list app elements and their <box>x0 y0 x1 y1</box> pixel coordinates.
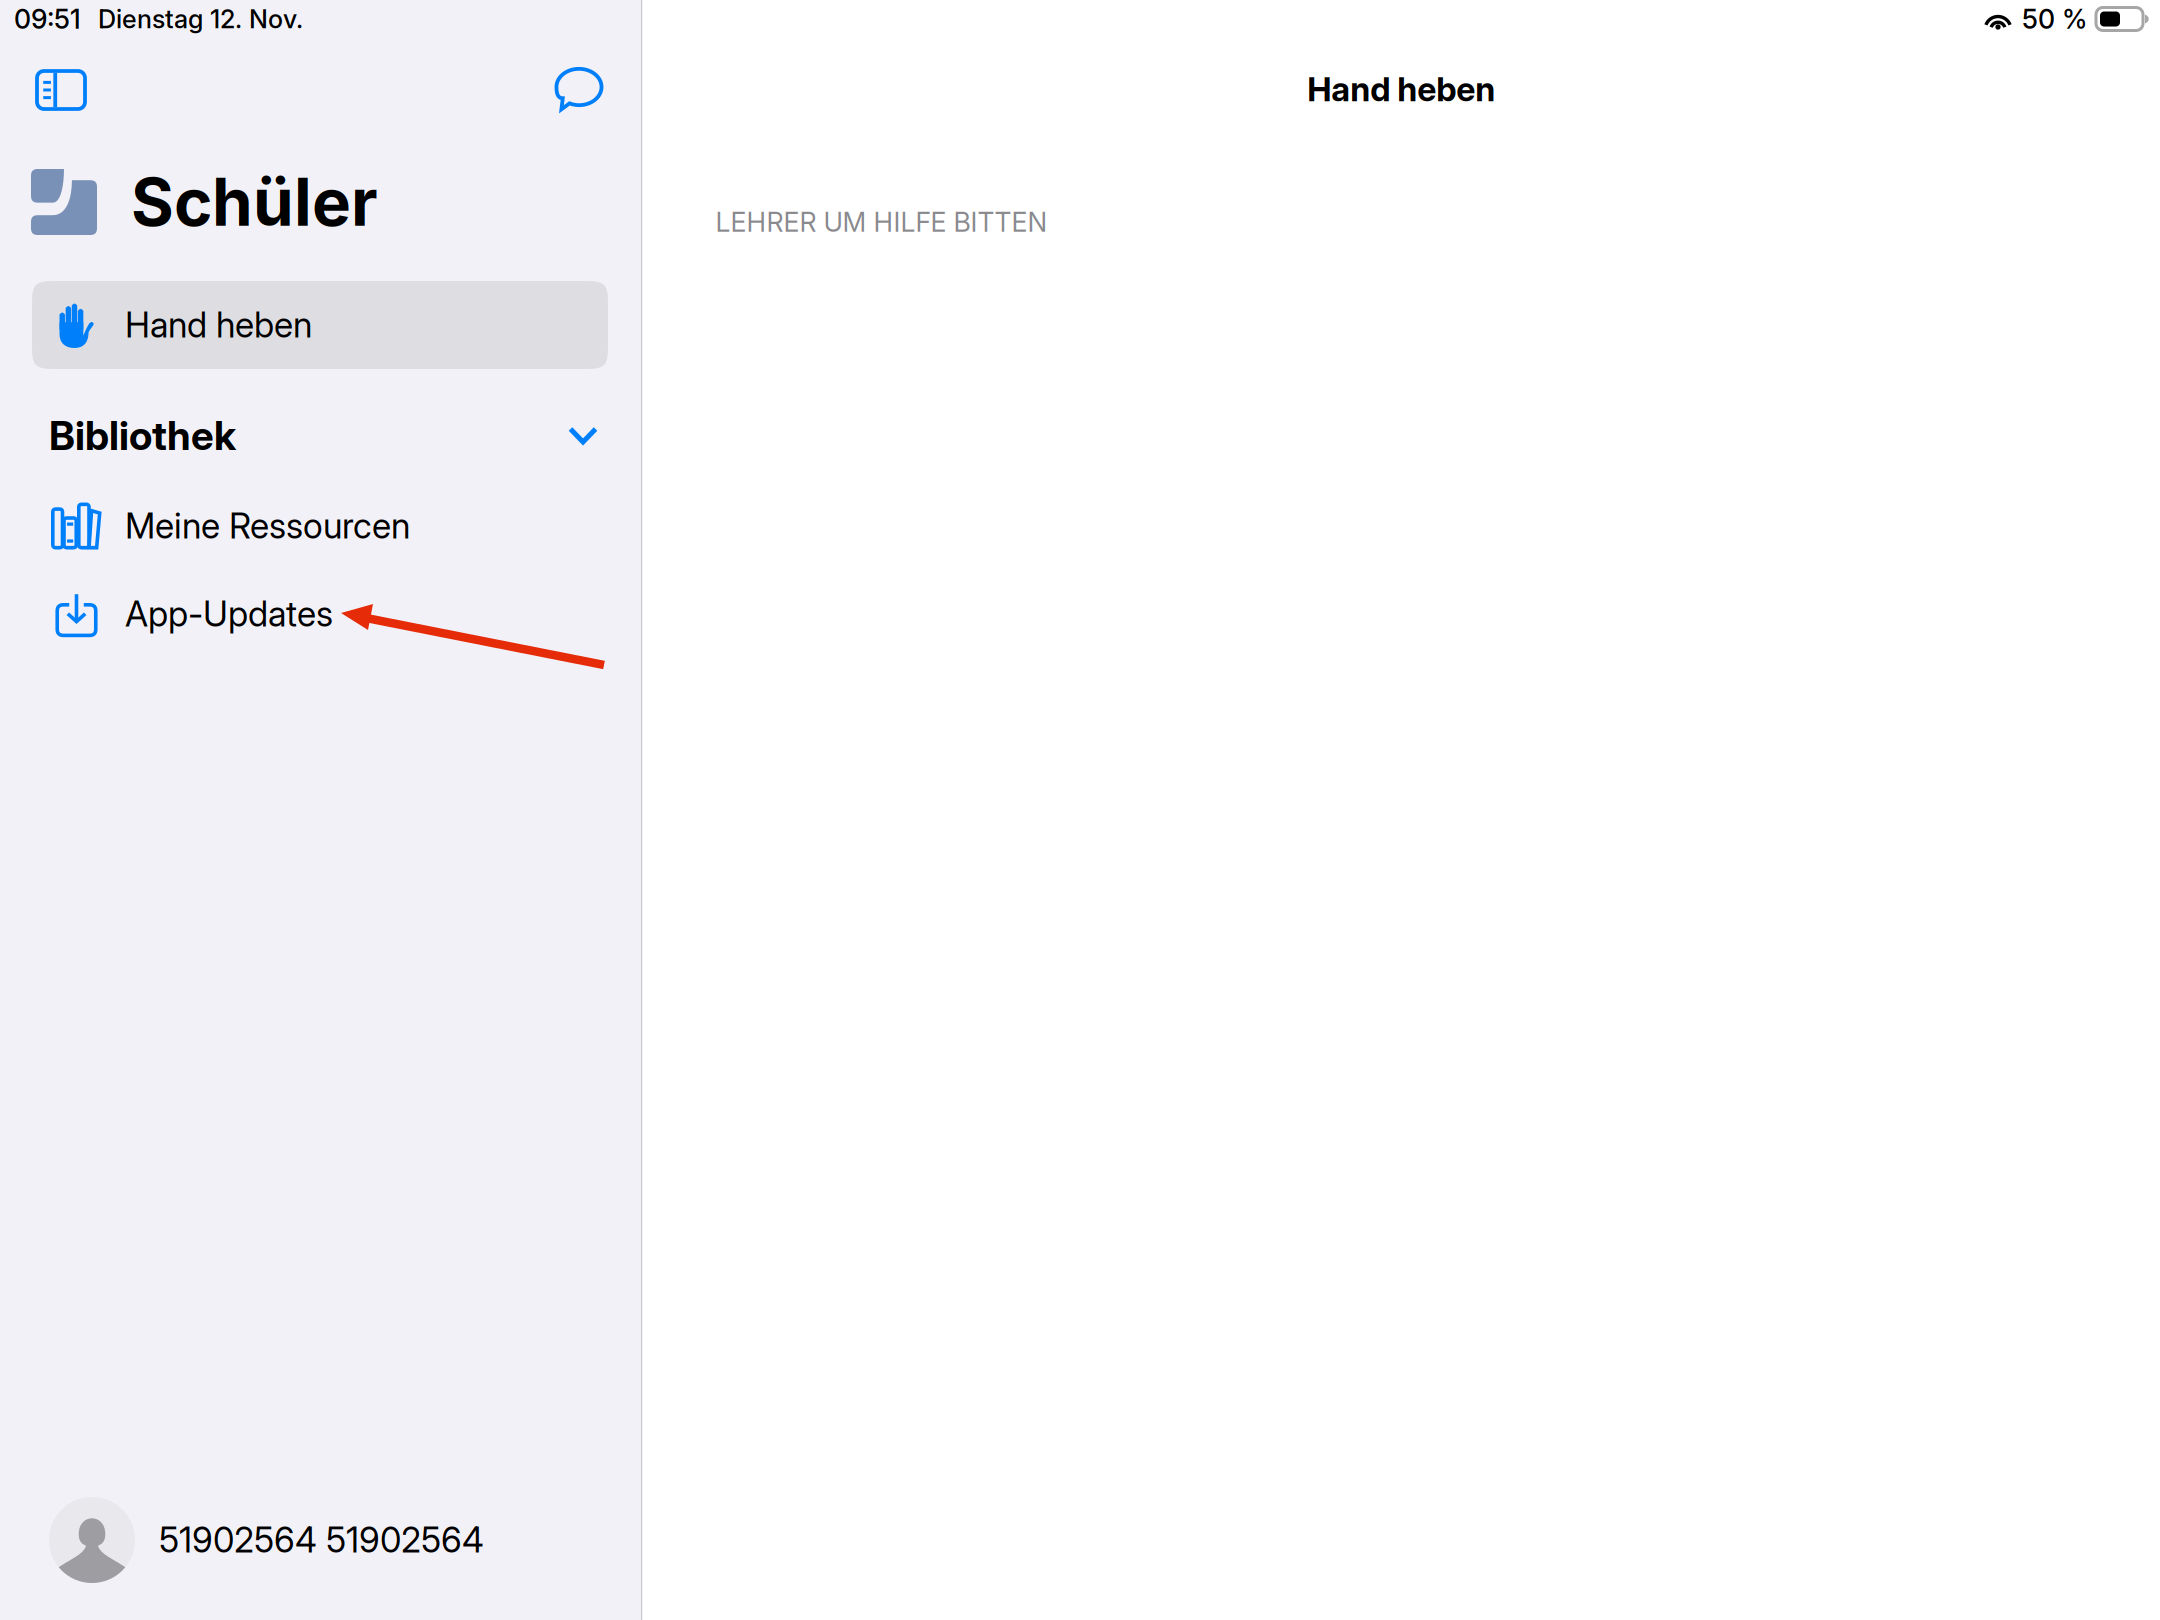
staticText: Hand heben <box>1307 69 1495 109</box>
staticText: LEHRER UM HILFE BITTEN <box>715 206 1047 238</box>
staticText: 50 % <box>2022 3 2087 35</box>
button[interactable]: Bibliothek <box>0 399 641 472</box>
staticText: 51902564 51902564 <box>159 1519 484 1561</box>
button[interactable]: Nachrichten <box>543 54 615 126</box>
button[interactable]: Hand heben <box>32 281 608 369</box>
staticText: Bibliothek <box>49 411 236 460</box>
staticText: 09:51 <box>14 3 81 35</box>
button[interactable]: 51902564 51902564 <box>0 1492 641 1588</box>
staticText: Schüler <box>131 162 378 241</box>
button[interactable]: Meine Ressourcen <box>32 482 608 570</box>
staticText: App-Updates <box>125 593 333 635</box>
button[interactable]: App-Updates <box>32 570 608 658</box>
staticText: Meine Ressourcen <box>125 505 410 547</box>
staticText: Hand heben <box>125 304 312 346</box>
button[interactable]: Seitenleiste ein-/ausblenden <box>25 54 97 126</box>
staticText: Dienstag 12. Nov. <box>98 4 303 34</box>
